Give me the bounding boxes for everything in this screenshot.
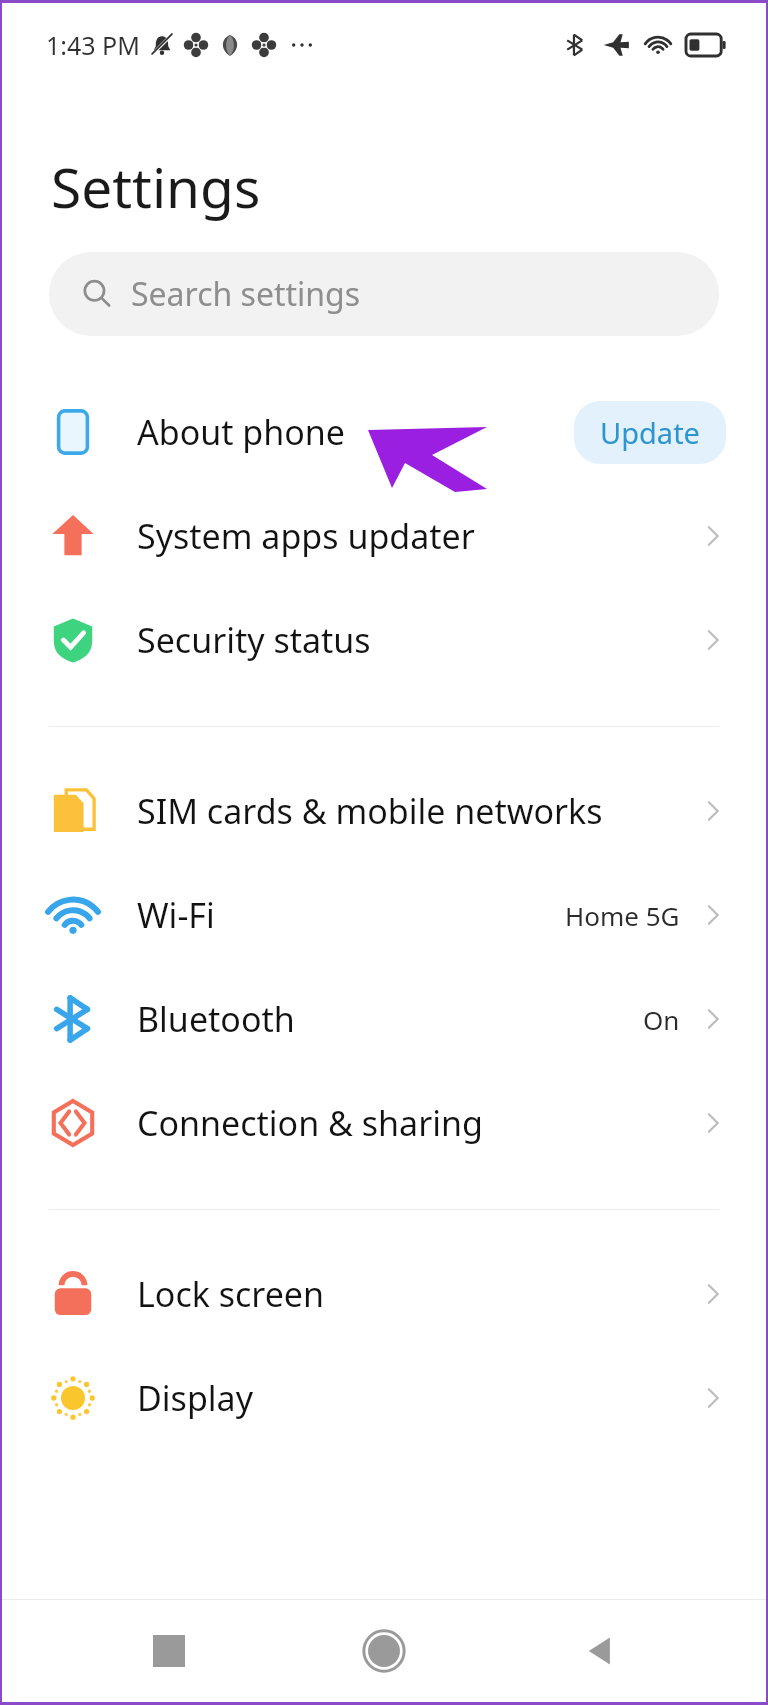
staticText: About phone <box>137 409 346 455</box>
staticText: Display <box>137 1375 253 1421</box>
staticText: Bluetooth <box>137 996 295 1042</box>
staticText: Settings <box>51 149 261 224</box>
staticText: Wi-Fi <box>137 892 215 938</box>
button[interactable]: Display <box>2 1346 766 1450</box>
staticText: On <box>643 1002 680 1037</box>
staticText: Home 5G <box>565 898 680 933</box>
staticText: Update <box>600 413 700 452</box>
button[interactable]: System apps updater <box>2 484 766 588</box>
staticText: Connection & sharing <box>137 1100 483 1146</box>
staticText: Search settings <box>131 272 361 316</box>
button[interactable]: Back <box>551 1603 647 1699</box>
button[interactable]: Wi-Fi <box>2 863 766 967</box>
button[interactable]: Update <box>574 401 726 464</box>
staticText: SIM cards & mobile networks <box>137 788 603 834</box>
button[interactable]: Security status <box>2 588 766 692</box>
button[interactable]: Connection & sharing <box>2 1071 766 1175</box>
staticText: 1:43 PM <box>46 28 140 62</box>
staticText: Security status <box>137 617 371 663</box>
button[interactable]: Bluetooth <box>2 967 766 1071</box>
button[interactable]: Search settings <box>49 252 719 336</box>
staticText: Lock screen <box>137 1271 325 1317</box>
button[interactable]: About phone <box>2 380 766 484</box>
button[interactable]: Home <box>336 1603 432 1699</box>
button[interactable]: Recents <box>121 1603 217 1699</box>
button[interactable]: Lock screen <box>2 1242 766 1346</box>
button[interactable]: SIM cards & mobile networks <box>2 759 766 863</box>
staticText: System apps updater <box>137 513 475 559</box>
